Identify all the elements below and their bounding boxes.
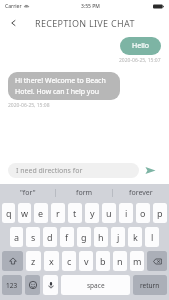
staticText: m [133,255,142,267]
button[interactable]: "for" [0,184,55,201]
staticText: j [117,231,120,243]
staticText: 2020-06-25, 15:08 [8,102,50,109]
button[interactable]: o [136,203,150,223]
button[interactable]: t [68,203,82,223]
button[interactable]: Hi there! Welcome to Beach Hotel. How ca… [15,76,113,96]
staticText: return [140,281,160,290]
button[interactable]: c [62,251,76,271]
staticText: "for" [20,188,36,198]
button[interactable]: r [51,203,65,223]
staticText: space [87,281,105,290]
button[interactable]: Voice input [43,275,58,295]
staticText: 3:55 PM [81,3,100,10]
staticText: e [38,207,44,219]
staticText: v [84,255,89,267]
button[interactable]: m [130,251,144,271]
staticText: forever [129,188,153,198]
staticText: RECEPTION LIVE CHAT [35,17,135,29]
button[interactable]: 123 [2,275,22,295]
button[interactable]: e [34,203,48,223]
button[interactable]: l [145,227,159,247]
staticText: f [65,231,69,243]
staticText: h [98,231,104,243]
staticText: z [31,255,36,267]
staticText: k [133,231,138,243]
button[interactable]: n [113,251,127,271]
staticText: g [81,231,87,243]
button[interactable]: Hello [132,41,149,51]
staticText: u [106,207,112,219]
staticText: Hi there! Welcome to Beach Hotel. How ca… [15,76,113,96]
button[interactable]: u [102,203,116,223]
button[interactable]: s [26,227,40,247]
staticText: t [73,207,77,219]
button[interactable]: h [94,227,108,247]
button[interactable]: x [44,251,59,271]
staticText: o [140,207,146,219]
button[interactable]: i [119,203,133,223]
button[interactable]: return [133,275,167,295]
button[interactable]: space [61,275,130,295]
button[interactable]: Emoji [25,275,40,295]
button[interactable]: form [56,184,112,201]
button[interactable]: Back [6,15,22,31]
button[interactable]: Shift [2,251,23,271]
staticText: b [100,255,106,267]
staticText: a [14,231,20,243]
button[interactable]: p [153,203,167,223]
staticText: p [157,207,163,219]
button[interactable]: a [10,227,23,247]
button[interactable]: b [96,251,110,271]
button[interactable]: f [60,227,74,247]
staticText: l [151,231,154,243]
button[interactable]: d [43,227,57,247]
button[interactable]: Send [139,159,161,181]
staticText: w [21,207,29,219]
staticText: d [47,231,53,243]
staticText: s [31,231,36,243]
staticText: r [56,207,60,219]
staticText: Carrier [5,3,22,10]
button[interactable]: I need directions for [16,163,131,178]
staticText: i [125,207,128,219]
staticText: I need directions for [16,166,83,176]
button[interactable]: w [18,203,31,223]
button[interactable]: k [128,227,142,247]
staticText: n [117,255,123,267]
button[interactable]: y [85,203,99,223]
button[interactable]: v [79,251,93,271]
staticText: form [76,188,93,198]
button[interactable]: j [111,227,125,247]
staticText: 123 [6,281,18,290]
button[interactable]: z [26,251,41,271]
staticText: c [67,255,72,267]
button[interactable]: g [77,227,91,247]
staticText: Hello [132,41,149,51]
staticText: x [49,255,54,267]
button[interactable]: q [2,203,15,223]
staticText: 2020-06-25, 15:07 [119,57,161,64]
staticText: y [90,207,95,219]
staticText: q [6,207,12,219]
button[interactable]: Backspace [147,251,167,271]
button[interactable]: forever [113,184,169,201]
